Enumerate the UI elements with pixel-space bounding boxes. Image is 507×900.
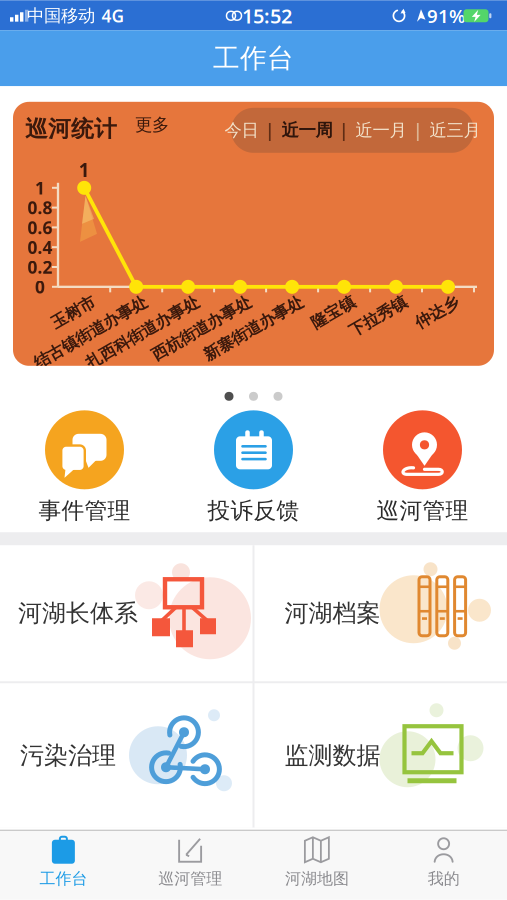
staticText: 新寨街道办事处 [186, 291, 298, 311]
button[interactable]: 投诉反馈 [169, 408, 338, 525]
button[interactable]: 巡河管理 [127, 836, 254, 888]
staticText: 4G [101, 4, 124, 27]
button[interactable]: 我的 [380, 836, 507, 888]
button[interactable]: 近一月 [355, 120, 406, 141]
staticText: 河湖长体系 [18, 598, 138, 628]
staticText: 投诉反馈 [207, 497, 299, 525]
staticText: 1 [79, 157, 90, 182]
staticText: 15:52 [242, 2, 292, 29]
button[interactable]: 事件管理 [0, 408, 169, 525]
staticText: 0.8 [27, 196, 52, 219]
staticText: 监测数据 [284, 741, 380, 770]
staticText: 河湖地图 [285, 869, 349, 888]
button[interactable]: 近一周 [281, 120, 332, 141]
staticText: 工作台 [39, 869, 87, 888]
staticText: 扎西科街道办事处 [66, 291, 194, 311]
button[interactable]: 河湖档案 [254, 545, 507, 681]
button[interactable]: 近三月 [429, 120, 480, 141]
staticText: 近一周 [281, 120, 332, 141]
staticText: 近一月 [355, 120, 406, 141]
staticText: 1 [35, 176, 45, 199]
button[interactable]: 河湖地图 [253, 836, 380, 888]
staticText: 河湖档案 [284, 598, 380, 628]
staticText: 工作台 [213, 42, 294, 75]
staticText: 巡河管理 [376, 497, 468, 525]
staticText: 今日 [224, 120, 258, 141]
staticText: 巡河统计 [25, 115, 117, 143]
button[interactable]: 巡河管理 [338, 408, 507, 525]
button[interactable]: 今日 [224, 120, 258, 141]
staticText: 中国移动 [27, 5, 95, 26]
staticText: 0.2 [27, 255, 52, 278]
staticText: 仲达乡 [406, 291, 454, 311]
staticText: | [265, 119, 275, 142]
staticText: 近三月 [429, 120, 480, 141]
staticText: 91% [427, 3, 465, 28]
button[interactable]: 污染治理 [0, 683, 252, 828]
button[interactable]: 工作台 [0, 836, 127, 888]
staticText: 0.4 [27, 236, 52, 259]
staticText: 事件管理 [38, 497, 130, 525]
staticText: 隆宝镇 [302, 291, 350, 311]
staticText: 玉树市 [42, 291, 90, 311]
staticText: | [339, 119, 349, 142]
staticText: 我的 [428, 869, 460, 888]
button[interactable]: 河湖长体系 [0, 545, 252, 681]
staticText: 更多 [135, 114, 169, 135]
staticText: 0.6 [27, 216, 52, 239]
button[interactable]: 更多 [135, 114, 169, 135]
staticText: | [413, 119, 423, 142]
staticText: 0 [35, 275, 45, 298]
staticText: 西杭街道办事处 [134, 291, 246, 311]
staticText: 下拉秀镇 [338, 291, 402, 311]
staticText: 污染治理 [20, 741, 116, 770]
staticText: 巡河管理 [158, 869, 222, 888]
staticText: 结古镇街道办事处 [14, 291, 142, 311]
button[interactable]: 监测数据 [254, 683, 507, 828]
